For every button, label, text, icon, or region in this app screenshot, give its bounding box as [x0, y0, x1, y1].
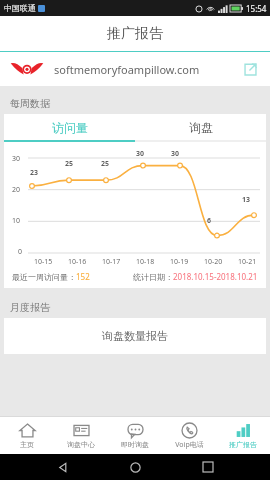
- staticText: 访问量: [52, 120, 88, 135]
- button[interactable]: 打开网站: [240, 59, 260, 79]
- button[interactable]: 最近任务: [197, 456, 219, 478]
- staticText: 询盘: [189, 120, 213, 135]
- staticText: 推广报告: [229, 440, 257, 449]
- staticText: 10-21: [238, 257, 257, 267]
- staticText: 10-16: [68, 257, 87, 267]
- staticText: 15:54: [246, 3, 267, 14]
- staticText: 月度报告: [10, 301, 50, 314]
- button[interactable]: 即时询盘: [108, 417, 162, 454]
- staticText: 10: [12, 216, 21, 226]
- staticText: 25: [101, 159, 110, 169]
- staticText: 0: [18, 247, 23, 257]
- staticText: 152: [76, 271, 90, 282]
- button[interactable]: 询盘数量报告: [4, 318, 266, 354]
- staticText: 30: [12, 154, 21, 164]
- staticText: 推广报告: [107, 25, 163, 43]
- button[interactable]: 主页: [0, 417, 54, 454]
- staticText: 13: [242, 195, 251, 205]
- button[interactable]: 推广报告: [216, 417, 270, 454]
- staticText: Voip电话: [175, 440, 204, 450]
- staticText: softmemoryfoampillow.com: [54, 62, 240, 77]
- staticText: 每周数据: [10, 97, 50, 110]
- staticText: 10-15: [34, 257, 53, 267]
- staticText: 主页: [20, 440, 34, 449]
- staticText: 25: [65, 159, 74, 169]
- staticText: 统计日期：: [133, 272, 173, 282]
- staticText: 询盘数量报告: [102, 329, 168, 343]
- button[interactable]: softmemoryfoampillow.com: [0, 52, 270, 86]
- button[interactable]: 返回: [51, 456, 73, 478]
- button[interactable]: 询盘: [135, 114, 266, 140]
- staticText: 中国联通: [4, 3, 36, 13]
- staticText: 询盘中心: [67, 440, 95, 449]
- staticText: 10-18: [136, 257, 155, 267]
- staticText: 10-19: [170, 257, 189, 267]
- staticText: 10-20: [204, 257, 223, 267]
- staticText: 2018.10.15-2018.10.21: [173, 271, 258, 282]
- button[interactable]: 主页: [124, 456, 146, 478]
- staticText: 即时询盘: [121, 440, 149, 449]
- button[interactable]: 询盘中心: [54, 417, 108, 454]
- staticText: 20: [12, 185, 21, 195]
- button[interactable]: Voip电话: [162, 417, 216, 454]
- staticText: 30: [136, 149, 145, 159]
- staticText: 6: [207, 216, 212, 226]
- staticText: 30: [171, 149, 180, 159]
- button[interactable]: 访问量: [4, 114, 135, 140]
- staticText: 23: [30, 168, 39, 178]
- staticText: 10-17: [102, 257, 121, 267]
- staticText: 最近一周访问量：: [12, 272, 76, 282]
